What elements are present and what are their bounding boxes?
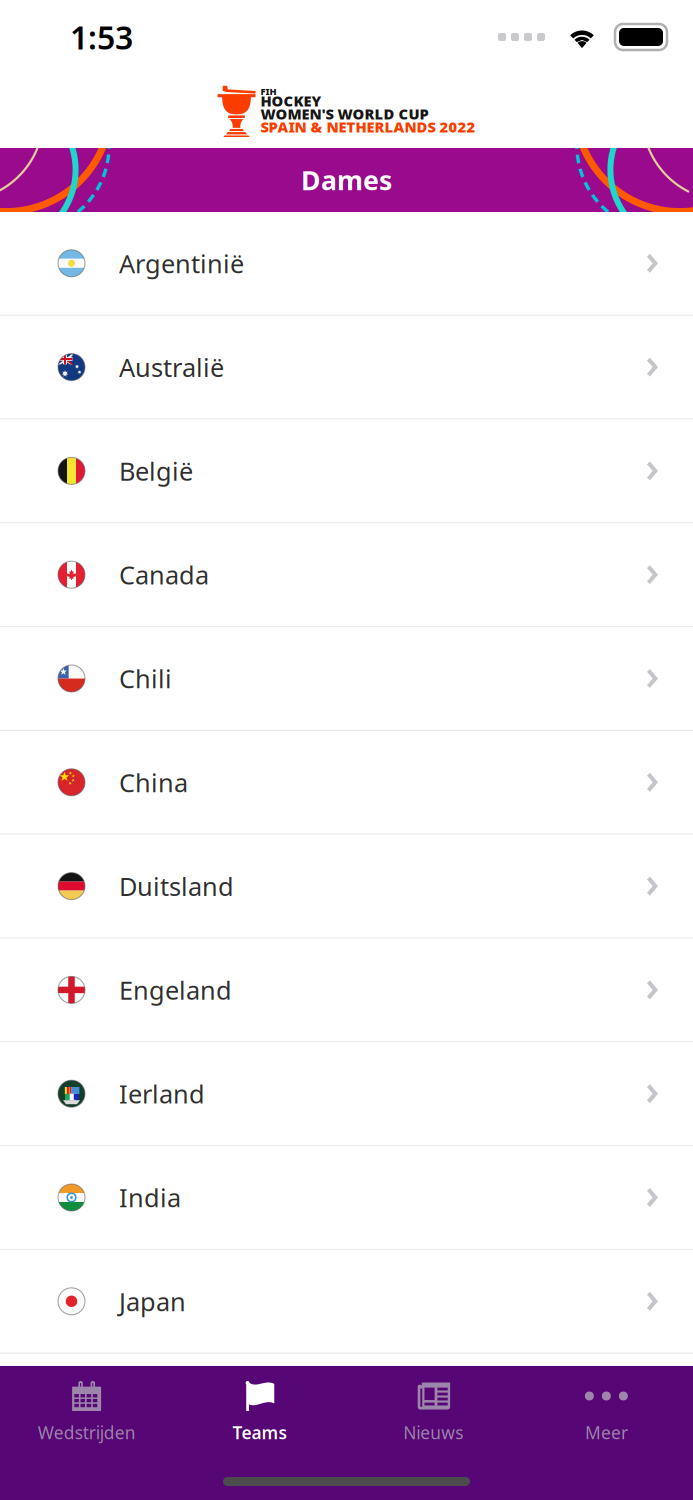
staticText: WOMEN'S WORLD CUP xyxy=(260,104,428,123)
button[interactable]: Japan xyxy=(0,1250,693,1354)
staticText: Dames xyxy=(301,162,392,198)
button[interactable]: China xyxy=(0,731,693,835)
button[interactable]: Teams xyxy=(173,1381,346,1444)
button[interactable]: Duitsland xyxy=(0,835,693,939)
staticText: Ierland xyxy=(119,1077,205,1110)
staticText: Argentinië xyxy=(119,246,244,280)
button[interactable]: Argentinië xyxy=(0,212,693,316)
button[interactable]: Nieuws xyxy=(346,1381,520,1444)
staticText: Meer xyxy=(585,1421,628,1444)
button[interactable]: Chili xyxy=(0,627,693,731)
staticText: Nieuws xyxy=(403,1421,463,1444)
button[interactable]: Wedstrijden xyxy=(0,1381,173,1444)
button[interactable]: Meer xyxy=(520,1381,693,1444)
staticText: Japan xyxy=(119,1284,186,1318)
button[interactable]: Ierland xyxy=(0,1042,693,1146)
staticText: HOCKEY xyxy=(260,91,321,110)
staticText: India xyxy=(119,1181,181,1214)
staticText: 1:53 xyxy=(70,16,133,58)
staticText: FIH xyxy=(260,85,276,97)
staticText: Duitsland xyxy=(119,869,234,903)
staticText: Wedstrijden xyxy=(38,1421,136,1444)
staticText: Teams xyxy=(232,1421,287,1444)
button[interactable]: India xyxy=(0,1146,693,1250)
staticText: Canada xyxy=(119,558,209,591)
staticText: Engeland xyxy=(119,973,232,1007)
staticText: China xyxy=(119,765,188,799)
button[interactable]: Australië xyxy=(0,316,693,420)
button[interactable]: België xyxy=(0,420,693,523)
staticText: SPAIN & NETHERLANDS 2022 xyxy=(260,117,475,136)
button[interactable]: Canada xyxy=(0,523,693,627)
staticText: Chili xyxy=(119,662,172,695)
staticText: Australië xyxy=(119,350,224,384)
staticText: België xyxy=(119,454,193,488)
button[interactable]: Engeland xyxy=(0,939,693,1042)
